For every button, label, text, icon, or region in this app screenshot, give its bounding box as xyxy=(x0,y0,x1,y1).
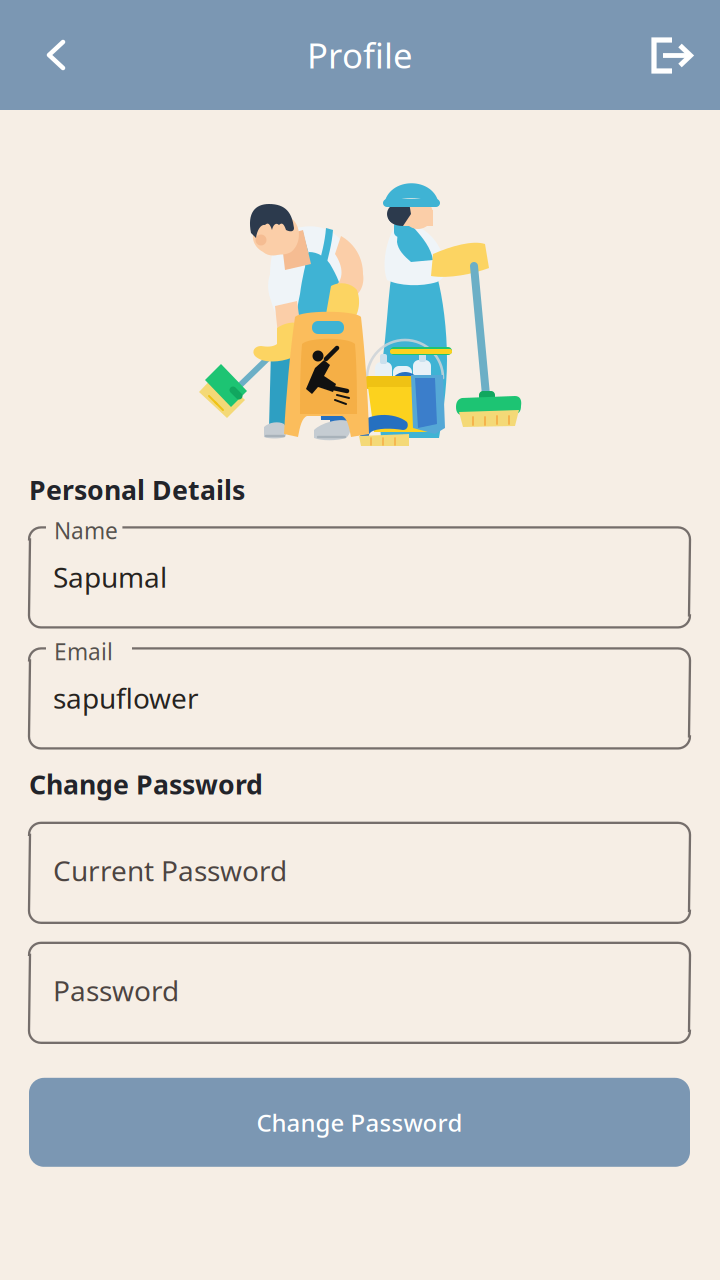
staticText: Profile xyxy=(307,32,413,78)
button[interactable]: Name xyxy=(29,526,690,628)
staticText: Name xyxy=(54,515,118,545)
button[interactable]: Email xyxy=(29,647,690,749)
staticText: Change Password xyxy=(29,766,263,802)
staticText: Current Password xyxy=(53,852,287,889)
staticText: Password xyxy=(53,972,179,1009)
staticText: Sapumal xyxy=(53,558,167,596)
button[interactable]: Current Password xyxy=(29,822,690,924)
button[interactable]: Change Password xyxy=(29,1078,690,1167)
staticText: Personal Details xyxy=(29,472,245,507)
staticText: Email xyxy=(54,636,113,666)
staticText: Change Password xyxy=(256,1106,462,1138)
staticText: sapuflower xyxy=(53,679,199,717)
button[interactable]: Password xyxy=(29,942,690,1044)
button[interactable]: Log out xyxy=(641,21,703,91)
button[interactable]: Back xyxy=(26,20,88,90)
